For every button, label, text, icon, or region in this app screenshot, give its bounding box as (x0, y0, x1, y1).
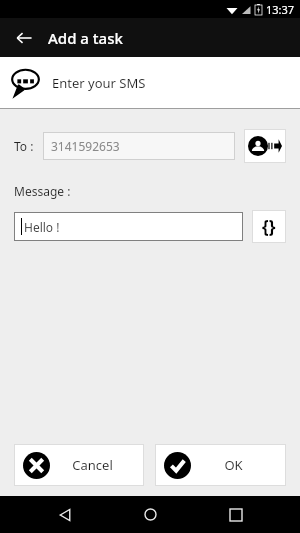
staticText: To : (14, 138, 34, 154)
button[interactable]: Pick contact (244, 129, 286, 163)
button[interactable]: 3141592653 (43, 132, 235, 160)
button[interactable]: OK (155, 444, 286, 486)
button[interactable]: Back (8, 22, 40, 54)
button[interactable]: Enter your SMS (0, 57, 300, 108)
staticText: Cancel (72, 456, 113, 474)
button[interactable]: Back (44, 496, 86, 533)
button[interactable]: Cancel (14, 444, 144, 486)
button[interactable]: Home (129, 496, 171, 533)
staticText: Message : (14, 183, 71, 199)
staticText: {} (262, 215, 276, 238)
staticText: Enter your SMS (52, 74, 146, 92)
staticText: Hello ! (24, 219, 60, 235)
staticText: 13:37 (266, 2, 295, 17)
staticText: 3141592653 (51, 138, 120, 154)
button[interactable]: Hello ! (14, 212, 243, 241)
button[interactable]: Recent apps (215, 496, 257, 533)
button[interactable]: Insert variable (252, 210, 286, 243)
staticText: Add a task (48, 28, 123, 48)
staticText: OK (224, 456, 243, 474)
